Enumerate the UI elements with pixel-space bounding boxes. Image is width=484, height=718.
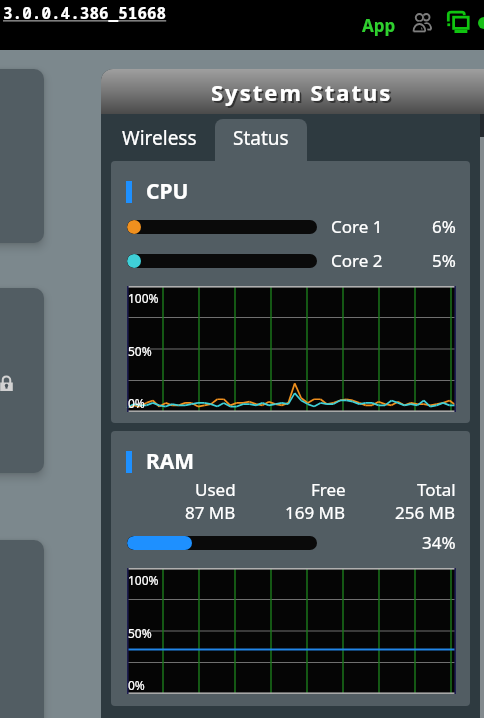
staticText: 100% bbox=[128, 290, 159, 306]
staticText: App bbox=[362, 14, 396, 37]
staticText: 100% bbox=[128, 572, 159, 588]
staticText: Wireless bbox=[122, 125, 197, 151]
staticText: 0% bbox=[128, 395, 145, 411]
staticText: 87 MB bbox=[185, 501, 236, 524]
staticText: Used bbox=[195, 478, 236, 501]
staticText: Core 1 bbox=[331, 215, 383, 238]
staticText: 169 MB bbox=[285, 501, 346, 524]
staticText: RAM bbox=[146, 447, 195, 476]
staticText: 50% bbox=[128, 343, 152, 359]
button[interactable]: Network Map bbox=[443, 6, 471, 34]
staticText: 256 MB bbox=[395, 501, 456, 524]
button[interactable]: Wireless bbox=[104, 119, 215, 161]
staticText: 3.0.0.4.386_51668 bbox=[3, 2, 167, 24]
staticText: Free bbox=[311, 478, 346, 501]
button[interactable]: App bbox=[360, 12, 398, 39]
staticText: 6% bbox=[432, 215, 456, 238]
button[interactable]: Status bbox=[215, 119, 307, 161]
button[interactable] bbox=[0, 288, 44, 473]
staticText: System Status bbox=[213, 79, 395, 109]
staticText: CPU bbox=[146, 177, 189, 206]
staticText: Total bbox=[417, 478, 456, 501]
button[interactable]: Clients bbox=[409, 8, 435, 34]
staticText: 5% bbox=[432, 249, 456, 272]
staticText: Core 2 bbox=[331, 249, 383, 272]
staticText: System Status bbox=[211, 77, 393, 107]
staticText: 0% bbox=[128, 677, 145, 693]
staticText: 34% bbox=[422, 531, 456, 554]
staticText: Status bbox=[233, 125, 289, 151]
staticText: 50% bbox=[128, 625, 152, 641]
